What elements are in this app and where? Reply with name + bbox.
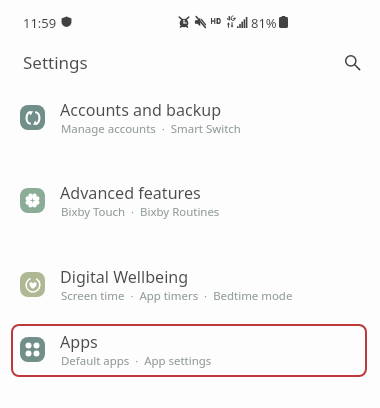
staticText: Digital Wellbeing xyxy=(60,266,189,288)
staticText: Apps xyxy=(60,331,98,353)
staticText: Settings xyxy=(23,51,88,74)
button[interactable]: Accounts and backup xyxy=(0,91,380,143)
button[interactable]: Digital Wellbeing xyxy=(0,258,380,310)
staticText: Bixby Touch · Bixby Routines xyxy=(61,204,220,220)
button[interactable]: Advanced features xyxy=(0,174,380,226)
button[interactable]: Apps xyxy=(0,323,380,375)
button[interactable]: Search xyxy=(335,45,369,79)
staticText: Screen time · App timers · Bedtime mode xyxy=(61,288,293,304)
staticText: 81% xyxy=(251,14,277,32)
staticText: 11:59 xyxy=(23,14,57,32)
staticText: Advanced features xyxy=(60,182,201,204)
staticText: Manage accounts · Smart Switch xyxy=(61,121,241,137)
staticText: Accounts and backup xyxy=(60,99,222,121)
staticText: Default apps · App settings xyxy=(61,353,212,369)
